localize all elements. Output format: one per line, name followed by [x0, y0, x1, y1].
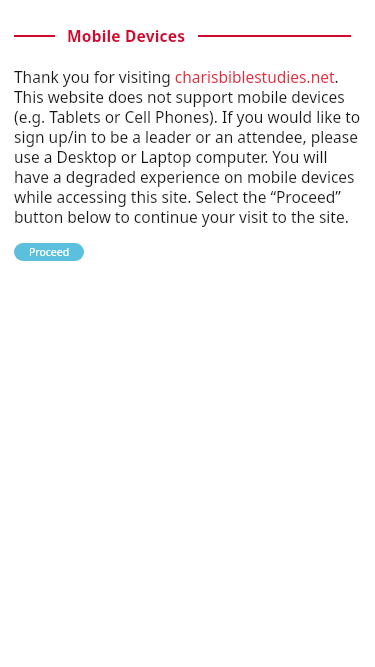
staticText: Thank you for visiting charisbiblestudie… — [14, 66, 361, 227]
button[interactable]: Proceed — [14, 243, 84, 261]
staticText: Proceed — [29, 245, 70, 259]
staticText: Mobile Devices — [67, 25, 186, 46]
